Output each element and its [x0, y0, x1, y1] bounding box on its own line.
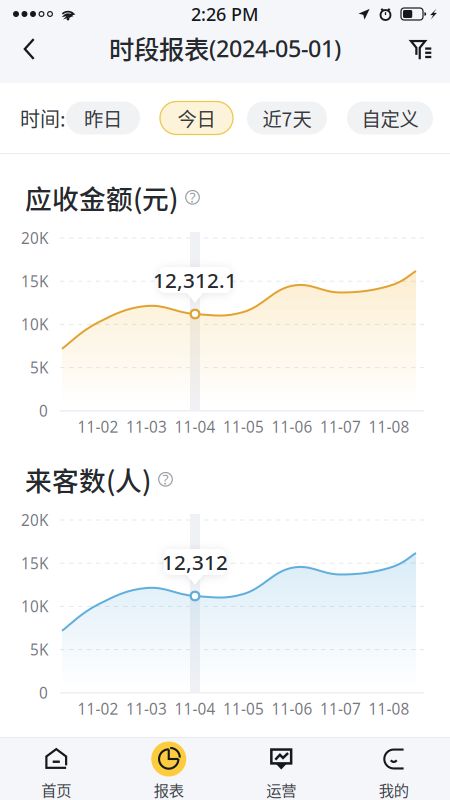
staticText: 20K: [21, 228, 48, 248]
staticText: 11-06: [271, 698, 312, 719]
staticText: 10K: [21, 314, 48, 335]
button[interactable]: 首页: [0, 735, 112, 800]
staticText: 11-03: [126, 698, 167, 719]
staticText: 首页: [41, 778, 71, 800]
staticText: 11-08: [368, 416, 409, 437]
staticText: 15K: [21, 553, 48, 574]
staticText: 昨日: [84, 104, 122, 132]
staticText: ?: [162, 470, 168, 489]
staticText: 11-05: [223, 698, 264, 719]
staticText: 5K: [30, 639, 48, 660]
button[interactable]: 昨日: [66, 101, 140, 134]
button[interactable]: 近7天: [247, 101, 327, 134]
staticText: 11-04: [174, 416, 215, 437]
staticText: 15K: [21, 271, 48, 292]
staticText: ?: [189, 188, 195, 207]
staticText: 11-03: [126, 416, 167, 437]
button[interactable]: 运营: [225, 735, 337, 800]
staticText: 5K: [30, 357, 48, 378]
staticText: 11-02: [77, 416, 118, 437]
staticText: 2:26 PM: [191, 2, 259, 26]
staticText: 今日: [177, 104, 215, 132]
button[interactable]: Back: [6, 28, 52, 70]
staticText: 11-04: [174, 698, 215, 719]
staticText: 自定义: [361, 104, 418, 132]
staticText: 12,312: [162, 548, 228, 576]
staticText: 11-08: [368, 698, 409, 719]
staticText: 时间:: [20, 103, 66, 132]
staticText: 应收金额(元): [25, 178, 178, 217]
staticText: 0: [39, 682, 48, 703]
staticText: 来客数(人): [25, 460, 151, 499]
staticText: 我的: [379, 778, 409, 800]
staticText: 近7天: [262, 104, 311, 132]
staticText: 11-06: [271, 416, 312, 437]
button[interactable]: 自定义: [347, 101, 433, 134]
staticText: 11-02: [77, 698, 118, 719]
staticText: 报表: [154, 778, 184, 800]
staticText: 11-05: [223, 416, 264, 437]
staticText: 11-07: [320, 698, 361, 719]
staticText: 11-07: [320, 416, 361, 437]
staticText: 12,312.1: [153, 266, 237, 294]
staticText: 运营: [266, 778, 296, 800]
staticText: 时段报表(2024-05-01): [109, 30, 341, 66]
staticText: 20K: [21, 510, 48, 530]
button[interactable]: 报表: [112, 735, 225, 800]
button[interactable]: 我的: [337, 735, 450, 800]
staticText: 10K: [21, 596, 48, 617]
button[interactable]: Filter: [398, 28, 444, 70]
staticText: 0: [39, 400, 48, 421]
button[interactable]: 今日: [160, 101, 233, 134]
